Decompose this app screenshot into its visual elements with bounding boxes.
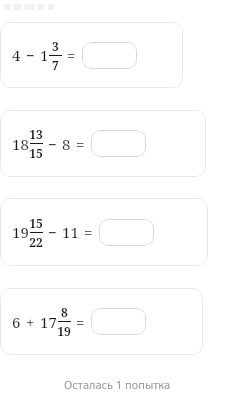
staticText: = [84, 222, 93, 242]
staticText: 17 [40, 312, 57, 332]
staticText: 3 [52, 38, 59, 54]
staticText: = [76, 134, 85, 154]
staticText: 4 [12, 45, 21, 65]
staticText: 7 [52, 57, 59, 73]
staticText: 18 [12, 134, 29, 154]
button[interactable]: 19 [0, 198, 208, 266]
button[interactable]: 18 [0, 110, 206, 177]
staticText: 6 [12, 312, 21, 332]
staticText: − [26, 45, 35, 65]
staticText: 15 [29, 145, 43, 161]
button[interactable]: 4 [0, 22, 183, 88]
button[interactable]: Answer field [82, 42, 137, 69]
staticText: − [48, 222, 57, 242]
staticText: 19 [12, 222, 29, 242]
staticText: = [76, 312, 85, 332]
button[interactable]: 6 [0, 288, 203, 355]
staticText: − [48, 134, 57, 154]
staticText: = [67, 45, 76, 65]
button[interactable]: Answer field [91, 130, 146, 157]
staticText: 1 [40, 45, 49, 65]
staticText: 8 [61, 304, 68, 320]
staticText: + [26, 312, 35, 332]
staticText: 19 [57, 323, 71, 339]
staticText: 15 [29, 215, 43, 231]
staticText: Осталась 1 попытка [64, 377, 171, 392]
staticText: 11 [62, 222, 79, 242]
button[interactable]: Answer field [99, 219, 154, 246]
staticText: 22 [29, 234, 43, 250]
staticText: 8 [62, 134, 71, 154]
button[interactable]: Answer field [91, 308, 146, 335]
staticText: 13 [29, 126, 43, 142]
